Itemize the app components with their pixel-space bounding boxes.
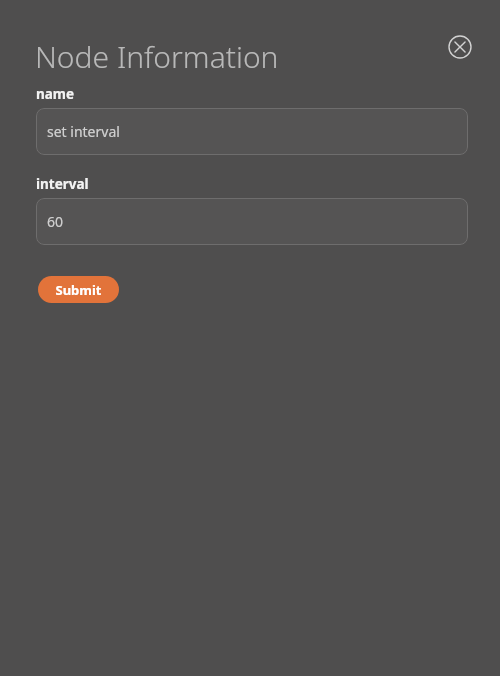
- button[interactable]: Close: [444, 31, 476, 63]
- button[interactable]: set interval: [36, 108, 468, 155]
- staticText: name: [36, 85, 75, 103]
- staticText: interval: [36, 175, 89, 193]
- staticText: set interval: [47, 122, 120, 141]
- button[interactable]: 60: [36, 198, 468, 245]
- staticText: Node Information: [35, 36, 279, 77]
- staticText: Submit: [55, 281, 102, 299]
- button[interactable]: Submit: [38, 276, 119, 303]
- staticText: 60: [47, 212, 64, 231]
